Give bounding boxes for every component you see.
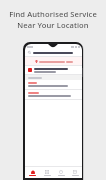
button[interactable]: Profile [68, 167, 82, 178]
button[interactable] [25, 49, 82, 56]
button[interactable] [25, 80, 82, 89]
staticText: Find Authorised Service [9, 9, 97, 19]
staticText: Near Your Location [17, 20, 89, 30]
button[interactable]: Home [25, 167, 40, 178]
button[interactable]: Offers [54, 167, 68, 178]
button[interactable]: Services [40, 167, 54, 178]
button[interactable] [25, 57, 82, 65]
button[interactable] [25, 90, 82, 99]
button[interactable] [25, 66, 82, 74]
